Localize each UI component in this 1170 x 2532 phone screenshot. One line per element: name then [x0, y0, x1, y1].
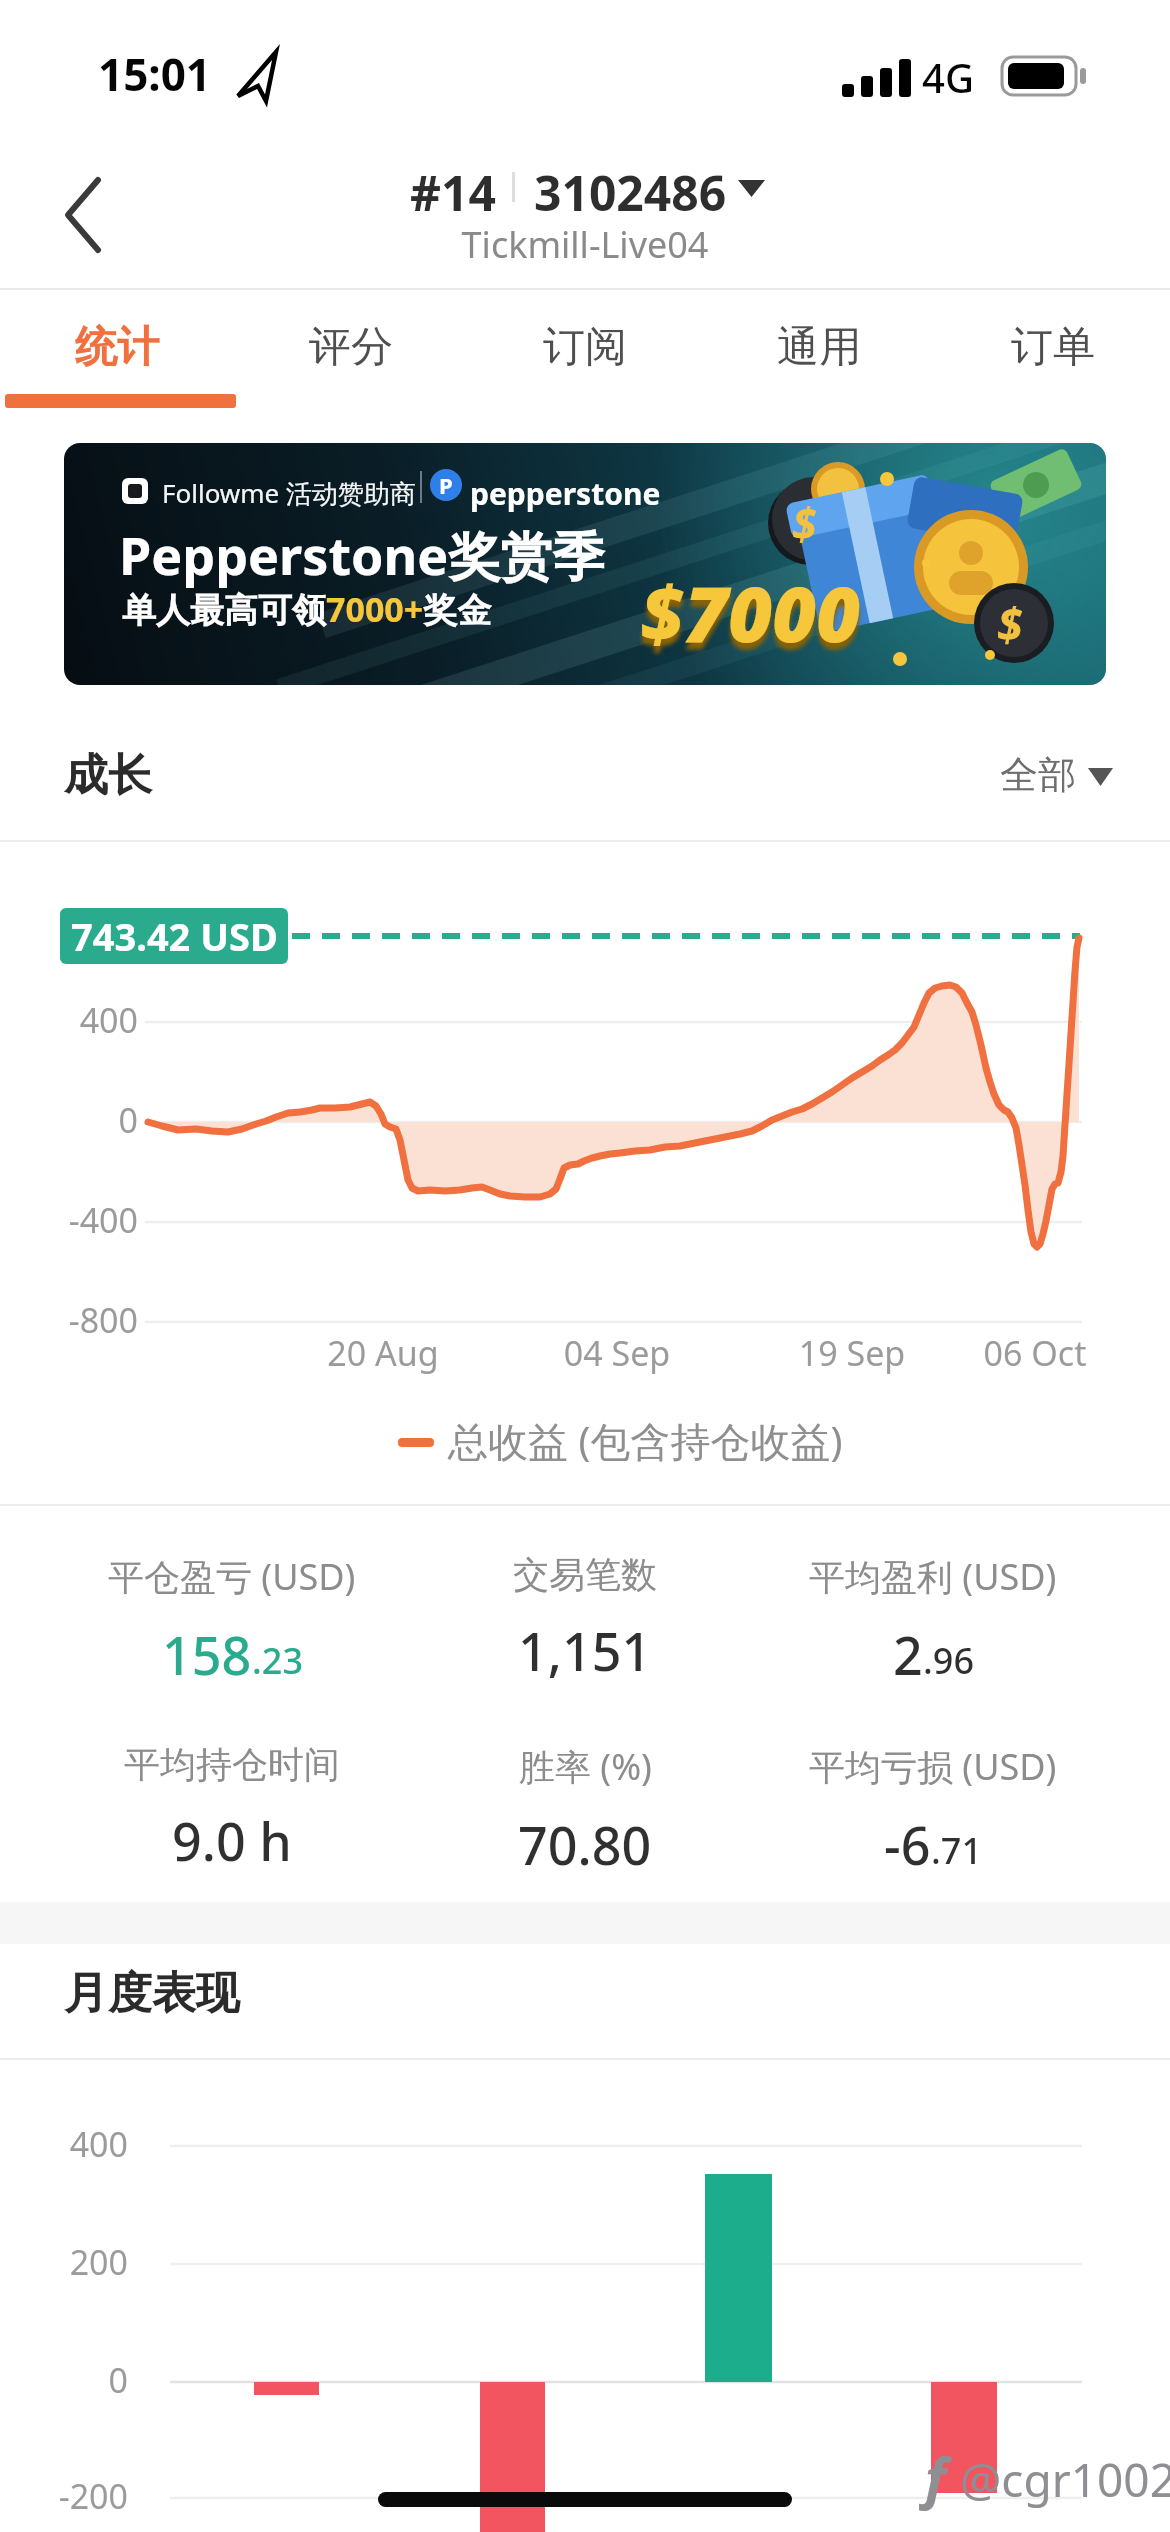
- staticText: 2: [893, 1619, 923, 1690]
- staticText: 158: [162, 1619, 252, 1690]
- staticText: -6: [884, 1809, 931, 1880]
- staticText: 19 Sep: [782, 1330, 922, 1376]
- staticText: Pepperstone奖赏季: [119, 519, 605, 590]
- staticText: 交易笔数: [513, 1552, 657, 1597]
- staticText: 9.0 h: [172, 1805, 292, 1876]
- staticText: 04 Sep: [547, 1330, 687, 1376]
- button[interactable]: 订单: [936, 300, 1170, 394]
- staticText: 平均盈利 (USD): [809, 1552, 1057, 1601]
- button[interactable]: 通用: [702, 300, 936, 394]
- staticText: 平均持仓时间: [124, 1742, 340, 1787]
- button[interactable]: $: [64, 443, 1106, 685]
- staticText: 70.80: [518, 1809, 652, 1880]
- staticText: .23: [252, 1636, 303, 1685]
- staticText: 月度表现: [64, 1966, 240, 2021]
- button[interactable]: 统计: [0, 300, 234, 394]
- staticText: 400: [38, 997, 138, 1043]
- button[interactable]: 评分: [234, 300, 468, 394]
- staticText: 单人最高可领7000+奖金: [122, 586, 492, 632]
- staticText: 成长: [64, 748, 152, 803]
- staticText: 统计: [75, 321, 159, 374]
- staticText: 15:01: [98, 44, 212, 104]
- staticText: f: [925, 2438, 946, 2514]
- staticText: 平均亏损 (USD): [809, 1742, 1057, 1791]
- staticText: -400: [38, 1197, 138, 1243]
- button[interactable]: [40, 160, 130, 270]
- staticText: Tickmill-Live04: [385, 220, 785, 269]
- staticText: .96: [923, 1636, 974, 1685]
- staticText: 通用: [777, 321, 861, 374]
- staticText: P: [439, 470, 453, 500]
- staticText: 06 Oct: [965, 1330, 1105, 1376]
- staticText: 4G: [922, 50, 974, 104]
- staticText: 20 Aug: [313, 1330, 453, 1376]
- staticText: 胜率 (%): [519, 1742, 652, 1791]
- staticText: 订阅: [543, 321, 627, 374]
- staticText: 3102486: [534, 160, 727, 220]
- staticText: pepperstone: [470, 473, 661, 514]
- staticText: 订单: [1011, 321, 1095, 374]
- staticText: 743.42 USD: [71, 910, 278, 962]
- staticText: $: [997, 593, 1023, 656]
- staticText: 全部: [1000, 751, 1076, 799]
- staticText: 总收益 (包含持仓收益): [448, 1413, 843, 1468]
- staticText: 评分: [309, 321, 393, 374]
- staticText: 1,151: [518, 1615, 652, 1686]
- staticText: $: [792, 493, 817, 553]
- staticText: -800: [38, 1297, 138, 1343]
- button[interactable]: #14: [400, 160, 780, 220]
- staticText: 0: [28, 2357, 128, 2403]
- staticText: 400: [28, 2121, 128, 2167]
- staticText: 200: [28, 2239, 128, 2285]
- staticText: 平仓盈亏 (USD): [108, 1552, 356, 1601]
- staticText: @cgr1002: [960, 2448, 1170, 2511]
- staticText: 0: [38, 1097, 138, 1143]
- staticText: Followme 活动赞助商: [162, 475, 417, 511]
- staticText: -200: [28, 2473, 128, 2519]
- staticText: $7000: [640, 561, 861, 665]
- staticText: .71: [931, 1826, 982, 1875]
- staticText: #14: [410, 160, 496, 220]
- button[interactable]: 订阅: [468, 300, 702, 394]
- button[interactable]: 全部: [980, 745, 1120, 805]
